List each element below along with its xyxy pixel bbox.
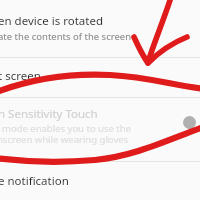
staticText: mode enables you to use the xyxy=(2,122,132,135)
staticText: hscreen while wearing gloves xyxy=(0,133,129,146)
staticText: en device is rotated xyxy=(0,13,103,29)
button[interactable]: en device is rotated xyxy=(0,0,200,57)
staticText: ate the contents of the screen xyxy=(0,30,132,43)
staticText: e notification xyxy=(0,173,69,189)
staticText: t screen xyxy=(0,68,41,84)
button[interactable]: e notification xyxy=(0,162,200,200)
staticText: h Sensitivity Touch xyxy=(0,106,98,122)
button[interactable]: h Sensitivity Touch xyxy=(0,98,200,161)
button[interactable]: High Sensitivity Touch toggle xyxy=(183,116,196,129)
button[interactable]: t screen xyxy=(0,58,200,97)
